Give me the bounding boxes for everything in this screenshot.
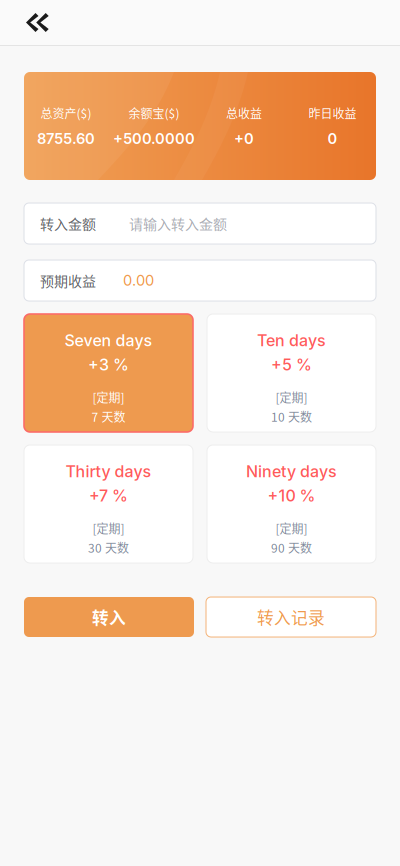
button[interactable]: Thirty days [24, 445, 193, 563]
staticText: Seven days [64, 331, 152, 350]
staticText: 余额宝($) [128, 104, 179, 122]
staticText: 昨日收益 [308, 104, 356, 122]
staticText: +5 % [271, 355, 312, 374]
staticText: 0 [327, 130, 337, 147]
staticText: +0 [234, 130, 254, 147]
staticText: 转入记录 [257, 605, 325, 629]
staticText: 请输入转入金额 [129, 213, 227, 234]
button[interactable]: Back [0, 0, 61, 46]
staticText: +3 % [88, 355, 129, 374]
staticText: Ninety days [246, 462, 337, 481]
staticText: 总资产($) [40, 104, 91, 122]
staticText: Ten days [257, 331, 326, 350]
staticText: Thirty days [65, 462, 151, 481]
staticText: 8755.60 [37, 130, 95, 147]
staticText: 转入金额 [40, 213, 96, 234]
button[interactable]: Seven days [24, 314, 193, 432]
staticText: 90 天数 [271, 539, 312, 556]
staticText: [定期] [92, 388, 124, 406]
staticText: [定期] [92, 519, 124, 537]
staticText: 预期收益 [40, 270, 96, 291]
staticText: [定期] [275, 519, 307, 537]
staticText: [定期] [275, 388, 307, 406]
button[interactable]: 转入记录 [206, 597, 376, 637]
staticText: 总收益 [226, 104, 262, 122]
staticText: +10 % [267, 486, 315, 505]
button[interactable]: Ten days [207, 314, 376, 432]
staticText: 转入 [92, 605, 126, 629]
staticText: 0.00 [123, 272, 154, 289]
staticText: 10 天数 [271, 408, 312, 425]
button[interactable]: 转入 [24, 597, 194, 637]
staticText: 30 天数 [88, 539, 129, 556]
staticText: +500.0000 [113, 130, 195, 147]
staticText: +7 % [89, 486, 128, 505]
staticText: 7 天数 [91, 408, 125, 425]
button[interactable]: Ninety days [207, 445, 376, 563]
